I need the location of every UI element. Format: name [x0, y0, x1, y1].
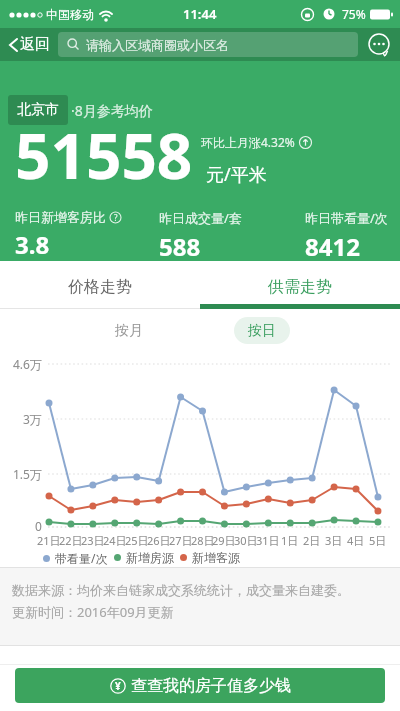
staticText: ?: [114, 212, 118, 223]
staticText: 1日: [281, 533, 299, 548]
staticText: 元/平米: [206, 162, 267, 187]
staticText: 30日: [234, 533, 258, 548]
staticText: 2日: [303, 533, 321, 548]
staticText: 返回: [20, 35, 50, 54]
staticText: 查查我的房子值多少钱: [131, 676, 291, 696]
staticText: ·8月参考均价: [71, 101, 153, 120]
staticText: 25日: [125, 533, 149, 548]
button[interactable]: 返回: [8, 35, 50, 54]
staticText: 31日: [256, 533, 280, 548]
staticText: 588: [159, 230, 201, 263]
staticText: 数据来源：均价来自链家成交系统统计，成交量来自建委。: [12, 582, 350, 598]
staticText: 3.8: [15, 228, 50, 261]
staticText: 29日: [212, 533, 236, 548]
staticText: 按日: [248, 322, 276, 340]
staticText: 北京市: [17, 101, 59, 119]
staticText: 新增客源: [192, 550, 240, 565]
staticText: 11:44: [183, 5, 217, 23]
staticText: 带看量/次: [55, 550, 108, 566]
button[interactable]: 请输入区域商圈或小区名: [58, 32, 358, 57]
staticText: 26日: [147, 533, 171, 548]
staticText: 23日: [81, 533, 105, 548]
staticText: 21日: [37, 533, 61, 548]
staticText: 3日: [325, 533, 343, 548]
button[interactable]: 价格走势: [0, 261, 200, 309]
staticText: 3万: [23, 411, 42, 427]
staticText: 中国移动: [46, 7, 94, 22]
button[interactable]: [365, 31, 392, 58]
button[interactable]: 按日: [234, 317, 290, 344]
staticText: 22日: [59, 533, 83, 548]
staticText: 昨日带看量/次: [305, 209, 388, 227]
staticText: 请输入区域商圈或小区名: [86, 37, 229, 53]
staticText: 环比上月涨4.32%: [201, 134, 295, 150]
staticText: 昨日成交量/套: [159, 209, 242, 227]
staticText: 27日: [169, 533, 193, 548]
staticText: 24日: [103, 533, 127, 548]
staticText: 28日: [191, 533, 215, 548]
staticText: 51558: [15, 113, 193, 197]
staticText: 1.5万: [13, 466, 42, 482]
staticText: 8412: [305, 230, 360, 263]
staticText: 按月: [115, 322, 143, 340]
staticText: 0: [35, 518, 42, 534]
staticText: 昨日新增客房比: [15, 209, 106, 225]
staticText: ¥: [115, 679, 121, 693]
staticText: 4日: [347, 533, 365, 548]
staticText: 75%: [342, 6, 366, 22]
staticText: 价格走势: [68, 277, 132, 297]
staticText: 4.6万: [13, 356, 42, 372]
staticText: 供需走势: [268, 277, 332, 297]
staticText: 5日: [369, 533, 387, 548]
staticText: 新增房源: [126, 550, 174, 565]
button[interactable]: 按月: [106, 318, 151, 344]
staticText: 更新时间：2016年09月更新: [12, 603, 174, 621]
button[interactable]: ¥: [15, 668, 385, 703]
button[interactable]: 供需走势: [200, 261, 400, 309]
